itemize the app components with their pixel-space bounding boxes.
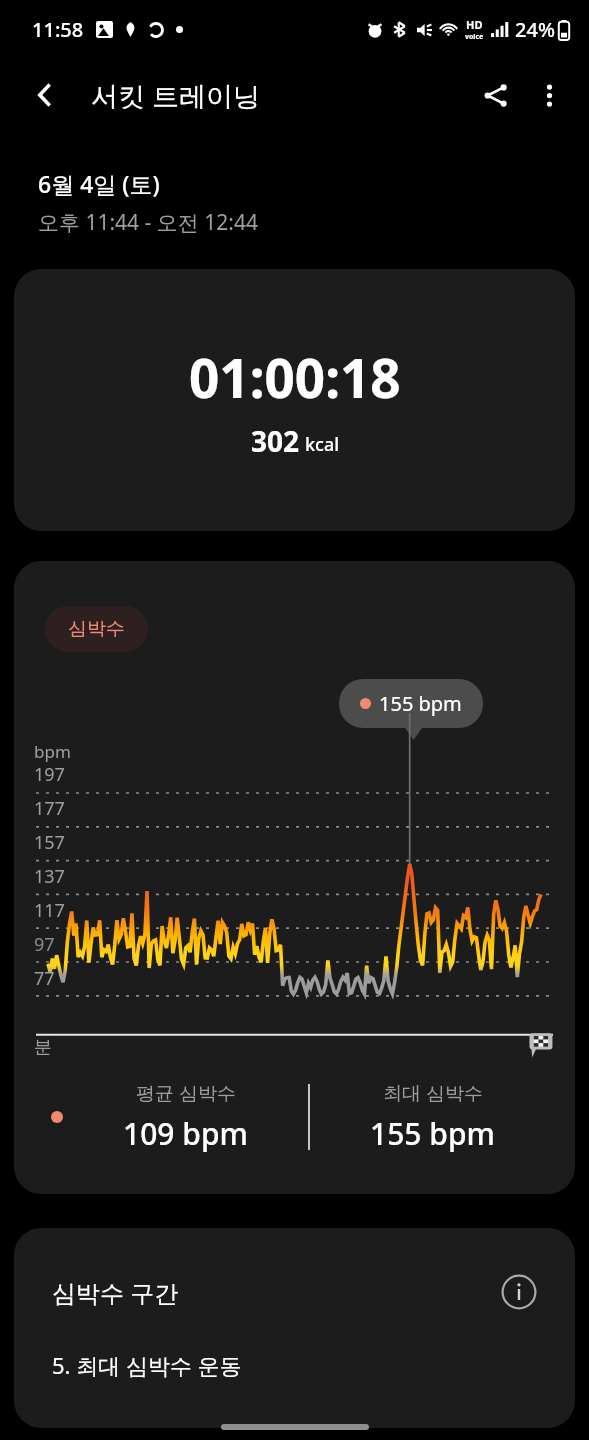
- staticText: 77: [34, 966, 55, 991]
- staticText: 01:00:18: [189, 341, 401, 413]
- button[interactable]: Share: [468, 68, 522, 122]
- staticText: 117: [34, 898, 65, 923]
- staticText: HD: [466, 17, 483, 32]
- staticText: 157: [34, 830, 65, 855]
- staticText: 97: [34, 932, 55, 957]
- button[interactable]: Back: [18, 68, 72, 122]
- button[interactable]: Information: [493, 1266, 545, 1318]
- staticText: 109 bpm: [123, 1113, 248, 1154]
- staticText: 6월 4일 (토): [38, 168, 160, 199]
- staticText: 24%: [515, 16, 555, 43]
- staticText: 137: [34, 864, 65, 889]
- staticText: kcal: [305, 432, 340, 457]
- staticText: voice: [465, 32, 484, 42]
- staticText: 심박수 구간: [52, 1276, 493, 1309]
- staticText: 197: [34, 762, 65, 787]
- staticText: bpm: [34, 740, 71, 763]
- button[interactable]: 심박수: [45, 606, 148, 652]
- staticText: 155 bpm: [370, 1113, 495, 1154]
- staticText: 심박수: [68, 617, 125, 641]
- staticText: 177: [34, 796, 65, 821]
- button[interactable]: More options: [522, 68, 576, 122]
- staticText: 오후 11:44 - 오전 12:44: [38, 208, 258, 237]
- staticText: 155 bpm: [379, 690, 462, 717]
- staticText: 최대 심박수: [383, 1080, 483, 1106]
- button[interactable]: 01:00:18: [14, 269, 575, 531]
- staticText: 5. 최대 심박수 운동: [52, 1350, 242, 1380]
- staticText: 302: [251, 422, 300, 460]
- staticText: 분: [34, 1036, 52, 1059]
- staticText: 서킷 트레이닝: [91, 77, 261, 114]
- staticText: 11:58: [32, 16, 84, 43]
- staticText: 평균 심박수: [136, 1080, 236, 1106]
